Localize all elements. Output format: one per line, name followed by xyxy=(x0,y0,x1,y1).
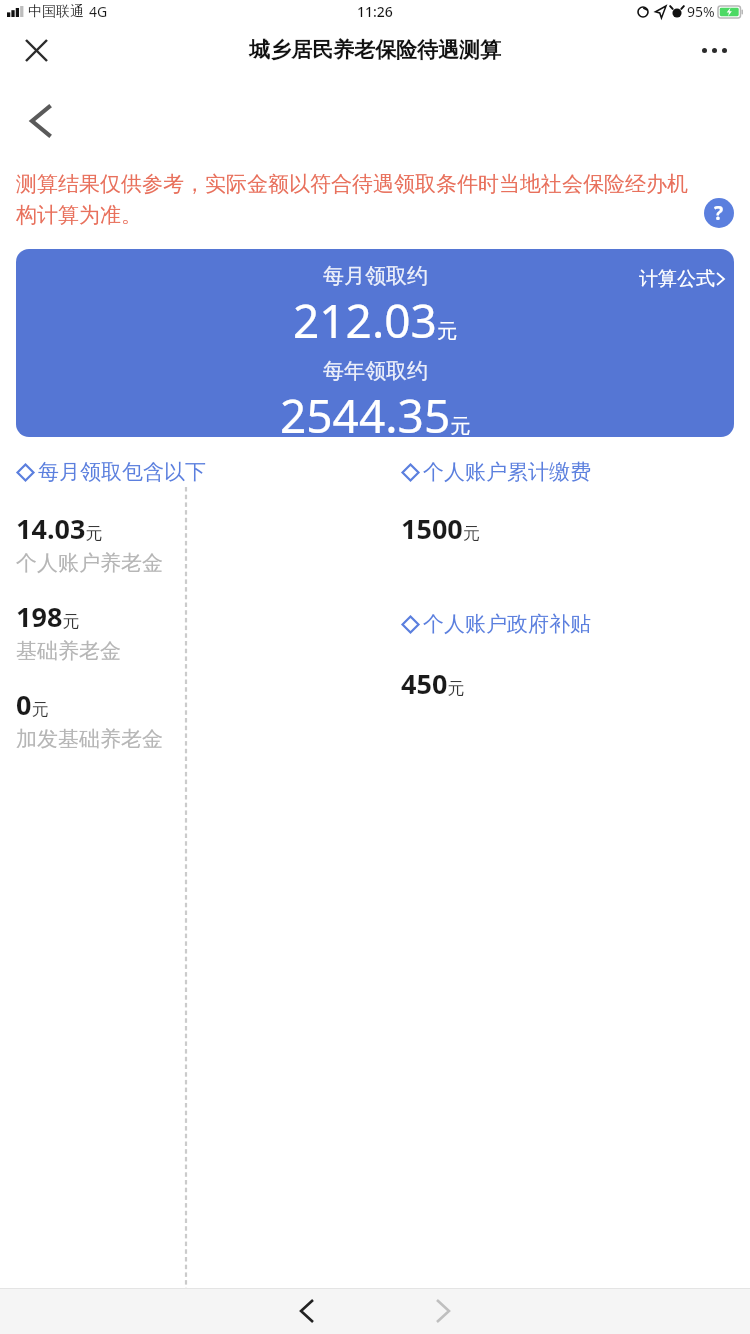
staticText: 95% xyxy=(687,2,715,21)
staticText: 加发基础养老金 xyxy=(16,726,163,752)
button[interactable]: 计算公式 xyxy=(639,267,724,291)
staticText: 中国联通 xyxy=(28,3,84,21)
staticText: 1500元 xyxy=(401,510,480,547)
staticText: 个人账户养老金 xyxy=(16,550,163,576)
button[interactable]: Back xyxy=(279,1288,335,1334)
button[interactable]: 计算公式 xyxy=(16,249,734,437)
staticText: 11:26 xyxy=(357,2,393,21)
button[interactable]: Forward xyxy=(415,1288,471,1334)
button[interactable]: 个人账户政府补贴 xyxy=(401,611,591,637)
button[interactable]: Help xyxy=(704,198,734,228)
button[interactable]: 个人账户累计缴费 xyxy=(401,459,591,485)
button[interactable]: Back xyxy=(16,97,64,145)
staticText: 个人账户政府补贴 xyxy=(423,611,591,637)
staticText: ? xyxy=(714,200,724,226)
staticText: 个人账户累计缴费 xyxy=(423,459,591,485)
staticText: 4G xyxy=(89,2,108,21)
staticText: 0元 xyxy=(16,686,49,723)
staticText: 198元 xyxy=(16,598,80,635)
staticText: 2544.35元 xyxy=(280,384,471,437)
staticText: 450元 xyxy=(401,665,465,702)
staticText: 14.03元 xyxy=(16,510,103,547)
staticText: 每月领取包含以下 xyxy=(38,459,206,485)
staticText: 212.03元 xyxy=(293,289,457,352)
staticText: 每年领取约 xyxy=(323,358,428,384)
button[interactable]: Close xyxy=(14,28,58,72)
staticText: 每月领取约 xyxy=(323,263,428,289)
staticText: 测算结果仅供参考，实际金额以符合待遇领取条件时当地社会保险经办机构计算为准。 xyxy=(16,171,700,228)
button[interactable]: More options xyxy=(692,28,736,72)
staticText: 基础养老金 xyxy=(16,638,121,664)
button[interactable]: 每月领取包含以下 xyxy=(16,459,206,485)
staticText: 计算公式 xyxy=(639,267,715,291)
staticText: 城乡居民养老保险待遇测算 xyxy=(249,37,501,63)
